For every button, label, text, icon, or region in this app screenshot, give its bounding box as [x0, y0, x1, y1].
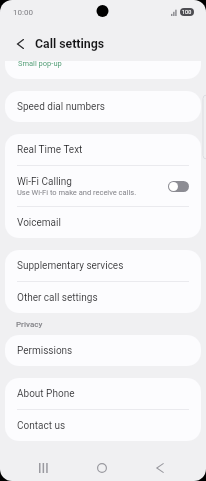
staticText: Permissions	[17, 345, 73, 357]
staticText: Privacy	[16, 320, 43, 329]
staticText: Other call settings	[17, 292, 98, 304]
staticText: Wi-Fi Calling	[17, 176, 72, 188]
button[interactable]: Back	[12, 36, 28, 52]
staticText: Use Wi-Fi to make and receive calls.	[17, 188, 137, 197]
button[interactable]: Small pop-up	[5, 61, 201, 79]
staticText: Voicemail	[17, 217, 61, 229]
staticText: 100	[182, 9, 192, 15]
button[interactable]: Back	[134, 441, 186, 481]
button[interactable]: Contact us	[5, 410, 201, 441]
button[interactable]: Voicemail	[5, 207, 201, 238]
staticText: Real Time Text	[17, 144, 83, 156]
button[interactable]: About Phone	[5, 378, 201, 409]
button[interactable]: Wi-Fi Calling toggle	[168, 181, 189, 192]
button[interactable]: Recents	[18, 441, 70, 481]
button[interactable]: Permissions	[5, 335, 201, 366]
button[interactable]: Other call settings	[5, 282, 201, 313]
staticText: Speed dial numbers	[17, 101, 105, 113]
staticText: Supplementary services	[17, 260, 124, 272]
button[interactable]: Wi-Fi Calling	[5, 166, 201, 206]
button[interactable]: Speed dial numbers	[5, 91, 201, 122]
staticText: Call settings	[35, 37, 105, 51]
button[interactable]: Supplementary services	[5, 250, 201, 281]
staticText: Contact us	[17, 420, 66, 432]
button[interactable]: Real Time Text	[5, 134, 201, 165]
staticText: About Phone	[17, 388, 75, 400]
staticText: Small pop-up	[18, 61, 62, 68]
button[interactable]: Home	[76, 441, 128, 481]
staticText: 10:00	[13, 8, 33, 17]
